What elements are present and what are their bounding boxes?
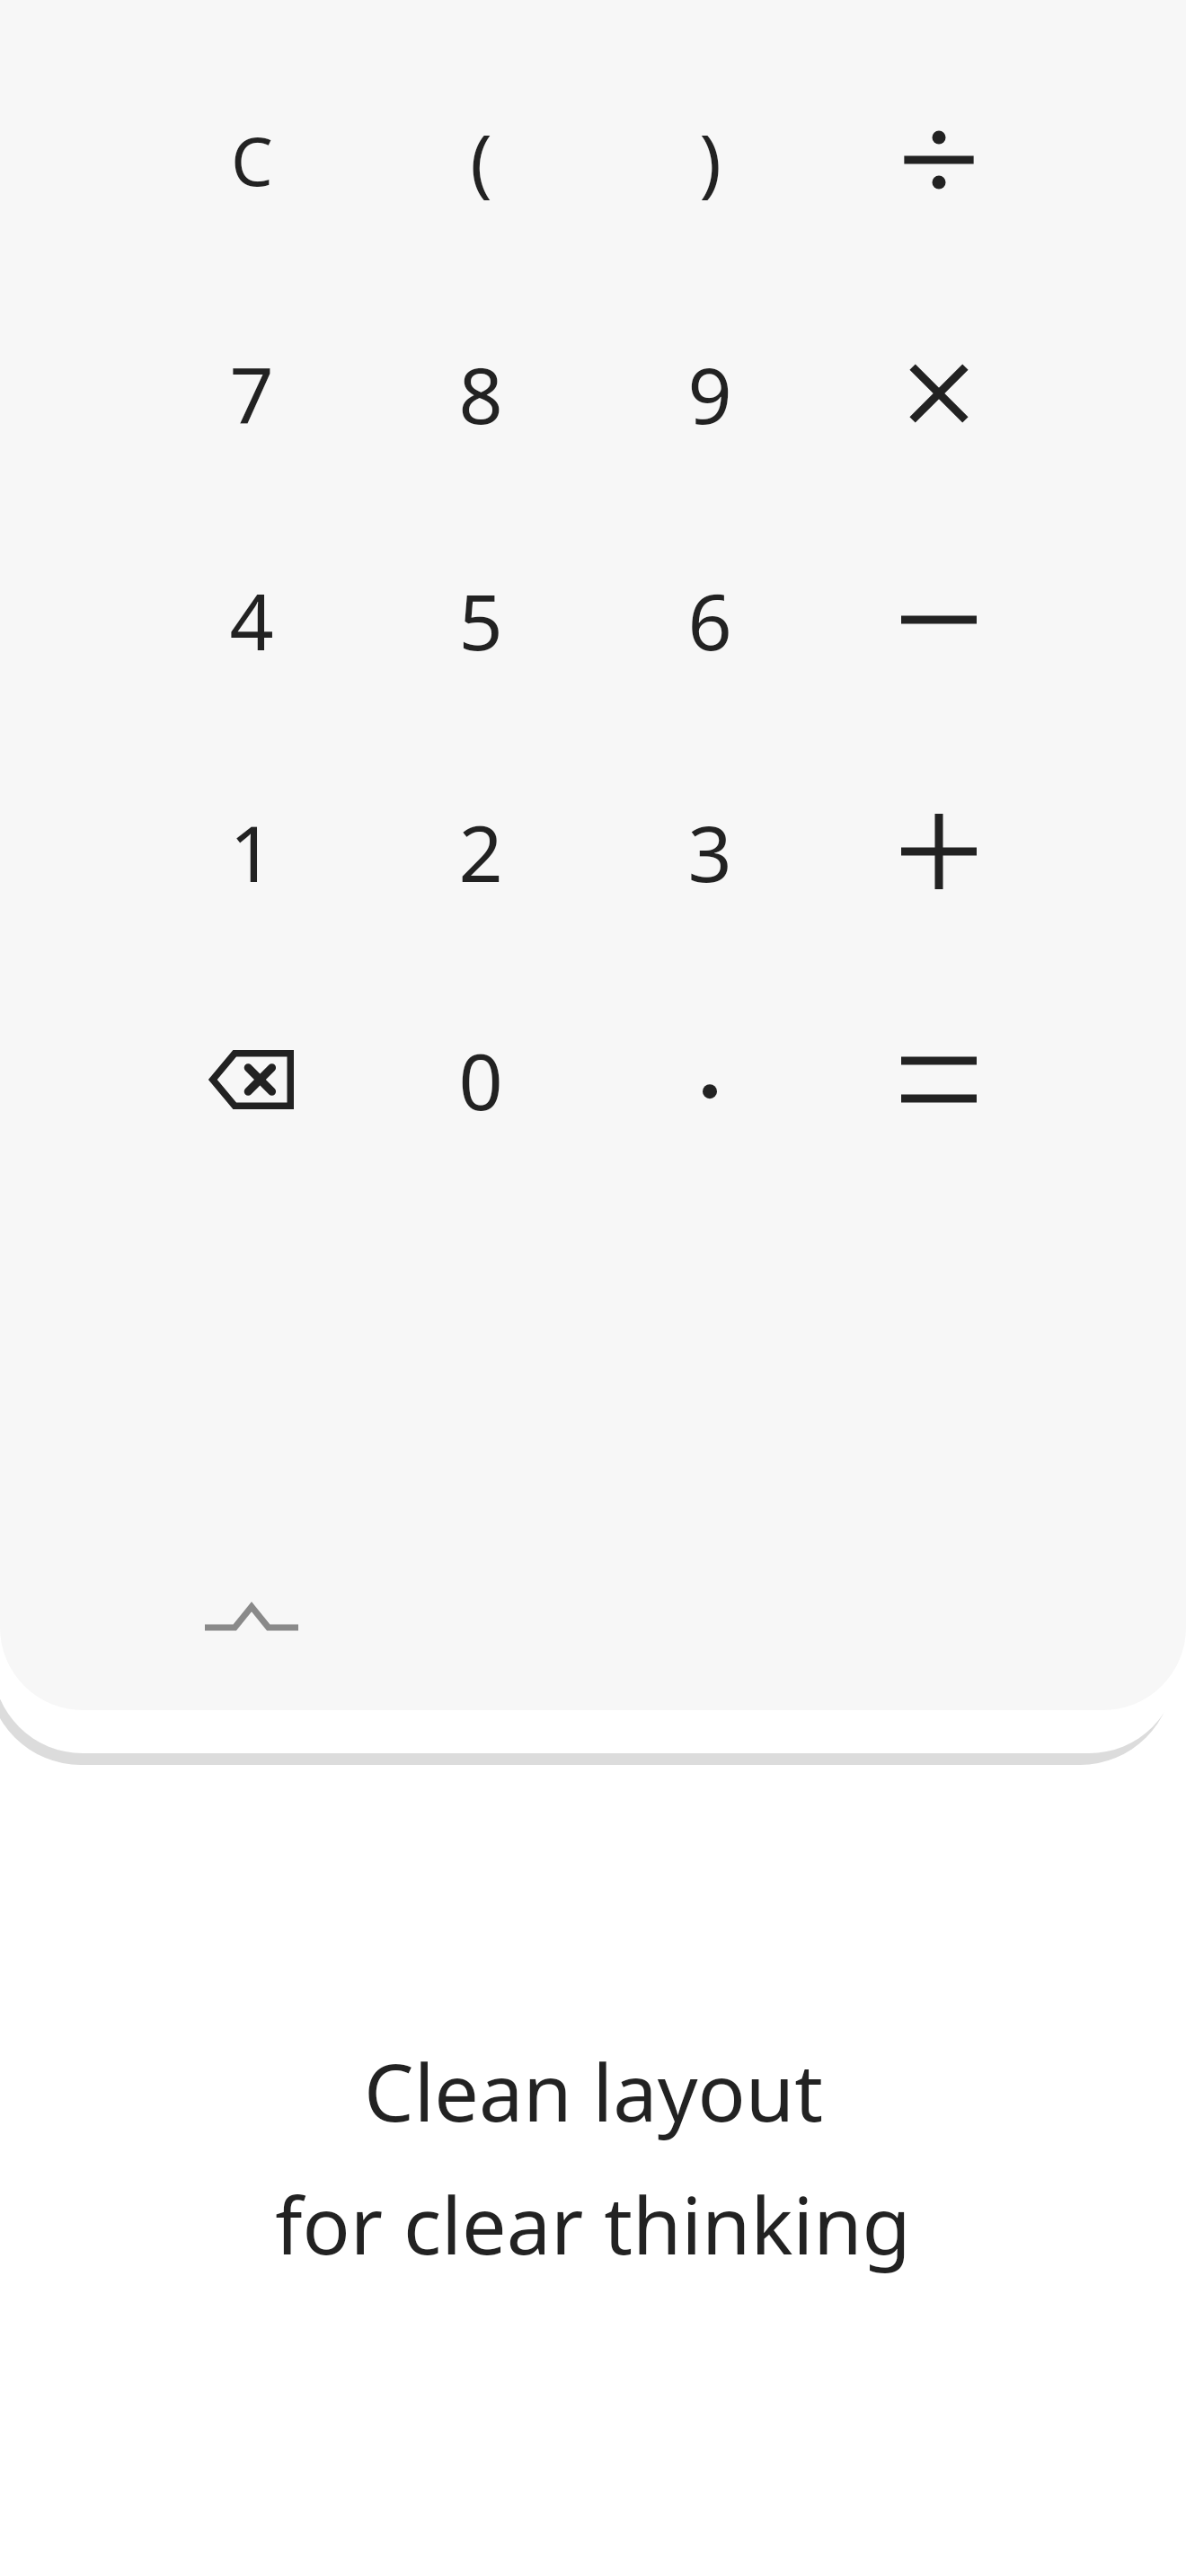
button[interactable]: Subtract — [828, 512, 1050, 728]
staticText: 7 — [229, 341, 274, 446]
button[interactable]: 5 — [369, 512, 592, 728]
button[interactable]: 7 — [140, 286, 363, 501]
button[interactable]: 3 — [598, 744, 821, 959]
staticText: 6 — [687, 568, 732, 673]
button[interactable]: Equals — [828, 972, 1050, 1187]
button[interactable]: Add — [828, 744, 1050, 959]
button[interactable]: Multiply — [828, 286, 1050, 501]
staticText: 0 — [458, 1028, 503, 1133]
staticText: 8 — [458, 341, 503, 446]
button[interactable]: 1 — [140, 744, 363, 959]
button[interactable]: Divide — [828, 52, 1050, 268]
button[interactable]: 8 — [369, 286, 592, 501]
staticText: for clear thinking — [275, 2170, 911, 2278]
staticText: ( — [470, 110, 492, 210]
staticText: C — [231, 115, 273, 206]
button[interactable]: 0 — [369, 972, 592, 1187]
staticText: 3 — [687, 799, 732, 904]
button[interactable]: C — [140, 52, 363, 268]
button[interactable]: ( — [369, 52, 592, 268]
staticText: 4 — [229, 568, 274, 673]
button[interactable]: Decimal point — [598, 972, 821, 1187]
button[interactable]: Collapse keypad — [180, 1565, 323, 1669]
button[interactable]: ) — [598, 52, 821, 268]
button[interactable]: Backspace — [140, 972, 363, 1187]
button[interactable]: 2 — [369, 744, 592, 959]
staticText: 2 — [458, 799, 503, 904]
button[interactable]: 6 — [598, 512, 821, 728]
staticText: ) — [699, 110, 721, 210]
staticText: Clean layout — [364, 2037, 823, 2145]
staticText: 9 — [687, 341, 732, 446]
button[interactable]: 9 — [598, 286, 821, 501]
button[interactable]: 4 — [140, 512, 363, 728]
staticText: 1 — [229, 799, 274, 904]
staticText: 5 — [458, 568, 503, 673]
